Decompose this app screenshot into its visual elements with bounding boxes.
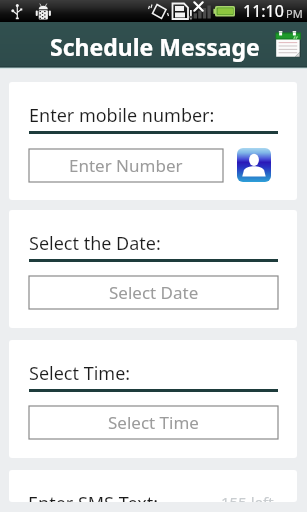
button[interactable]: Enter Number [29,149,223,182]
staticText: Schedule Message [50,31,260,62]
button[interactable]: Select Date [29,276,278,309]
staticText: Enter SMS Text: [28,491,159,502]
staticText: Select Time: [29,361,131,386]
staticText: Select Date [109,281,199,304]
staticText: Enter mobile number: [29,103,215,128]
staticText: PM [286,6,303,21]
staticText: 11:10 [243,0,284,22]
button[interactable]: Scheduled messages [274,31,301,58]
button[interactable]: Pick contact [237,148,271,182]
staticText: Enter Number [69,154,183,177]
staticText: Select the Date: [29,231,161,256]
button[interactable]: Select Time [29,406,278,439]
staticText: Select Time [108,411,199,434]
staticText: 155 left [221,492,274,502]
